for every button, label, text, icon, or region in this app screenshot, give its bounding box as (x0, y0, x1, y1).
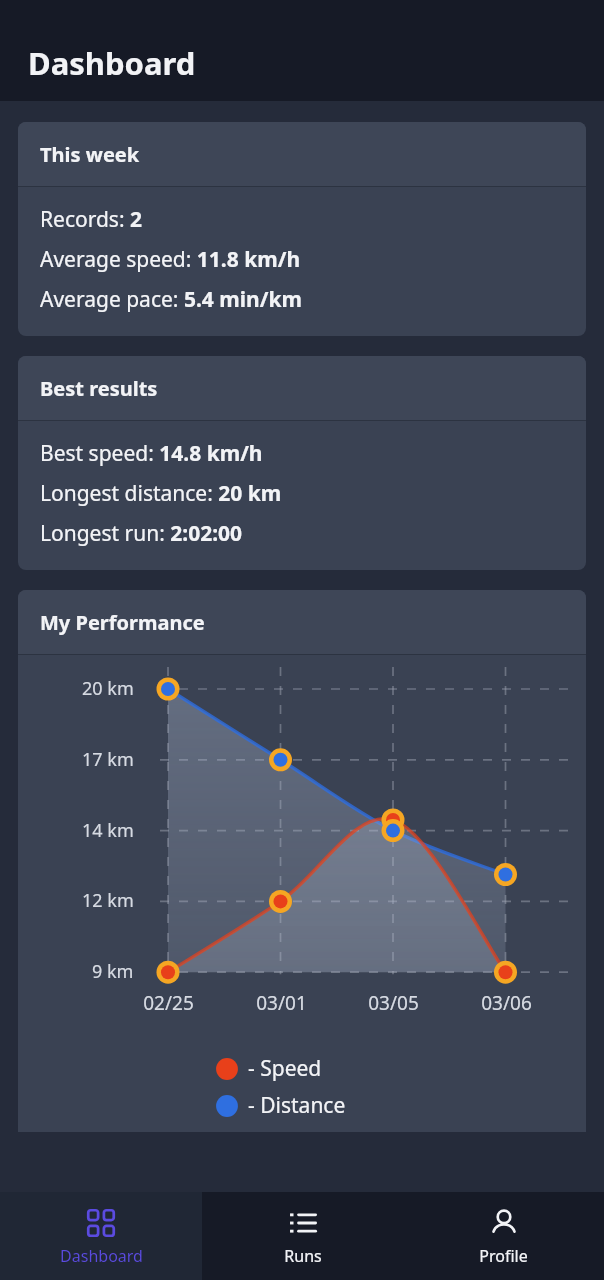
staticText: This week (40, 141, 140, 168)
staticText: My Performance (40, 609, 205, 636)
staticText: 03/05 (368, 990, 419, 1016)
staticText: Best speed: 14.8 km/h (40, 439, 263, 468)
button[interactable]: Profile (403, 1192, 604, 1280)
button[interactable]: This week (18, 122, 586, 336)
staticText: Runs (284, 1245, 322, 1267)
staticText: - Speed (248, 1054, 322, 1083)
button[interactable]: - Speed (214, 1054, 390, 1083)
staticText: - Distance (248, 1091, 346, 1120)
staticText: 12 km (82, 888, 134, 913)
staticText: Best results (40, 375, 158, 402)
staticText: 20 km (82, 676, 134, 701)
staticText: Dashboard (28, 42, 196, 84)
staticText: 03/06 (481, 990, 532, 1016)
staticText: Dashboard (60, 1245, 143, 1267)
button[interactable]: Dashboard (0, 1192, 202, 1280)
staticText: Average pace: 5.4 min/km (40, 285, 302, 314)
staticText: Average speed: 11.8 km/h (40, 245, 301, 274)
staticText: Longest run: 2:02:00 (40, 519, 243, 548)
staticText: 9 km (92, 959, 134, 984)
button[interactable]: Best results (18, 356, 586, 570)
button[interactable]: My Performance (18, 590, 586, 1132)
button[interactable]: Runs (202, 1192, 403, 1280)
staticText: 02/25 (143, 990, 194, 1016)
staticText: Longest distance: 20 km (40, 479, 282, 508)
staticText: 17 km (82, 747, 134, 772)
staticText: Profile (479, 1245, 528, 1267)
staticText: 03/01 (256, 990, 307, 1016)
staticText: 14 km (82, 818, 134, 843)
button[interactable]: - Distance (214, 1091, 390, 1120)
staticText: Records: 2 (40, 205, 143, 234)
